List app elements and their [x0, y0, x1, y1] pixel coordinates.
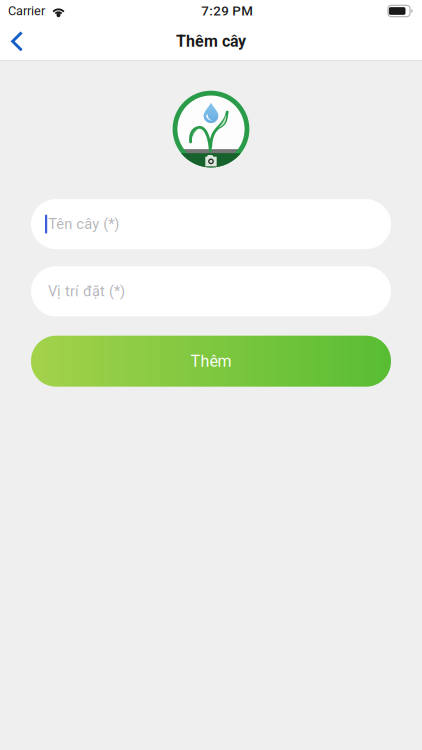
staticText: Thêm: [190, 352, 231, 371]
staticText: 7:29 PM: [201, 3, 253, 19]
button[interactable]: Tên cây (*): [31, 199, 391, 249]
staticText: Tên cây (*): [48, 215, 119, 233]
button[interactable]: Back: [0, 21, 48, 61]
button[interactable]: Vị trí đặt (*): [31, 266, 391, 316]
button[interactable]: Thêm: [31, 336, 391, 387]
staticText: Carrier: [8, 4, 45, 18]
staticText: Thêm cây: [176, 32, 246, 51]
staticText: Vị trí đặt (*): [48, 283, 125, 300]
